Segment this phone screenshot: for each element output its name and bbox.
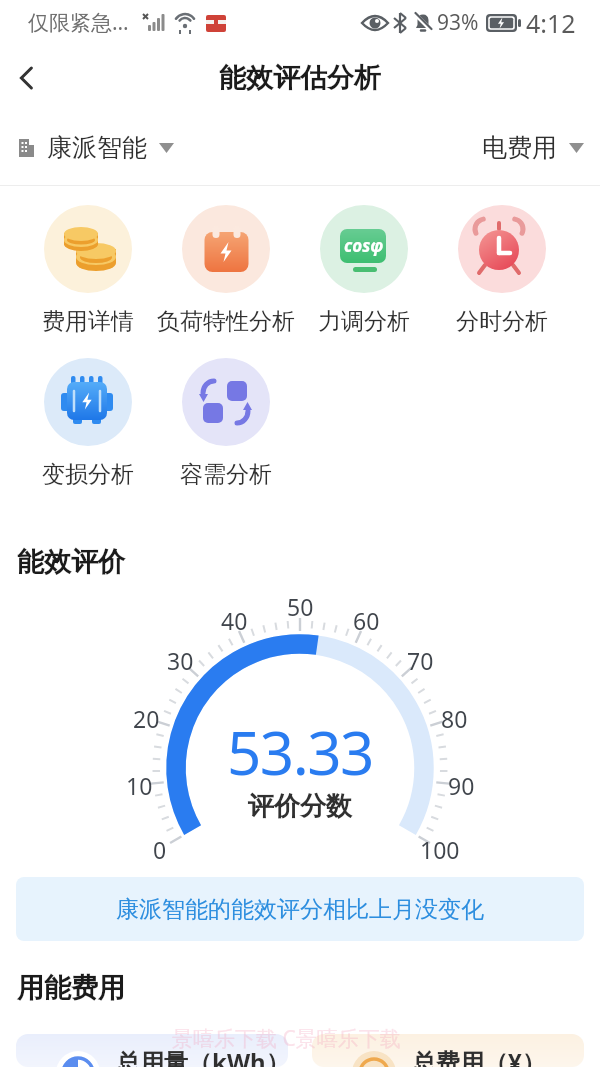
staticText: 80 xyxy=(441,703,468,734)
button[interactable]: cosφ xyxy=(295,205,433,336)
button[interactable]: 容需分析 xyxy=(157,358,295,489)
staticText: 容需分析 xyxy=(180,460,272,489)
button[interactable]: 总用量（kWh） xyxy=(16,1034,288,1067)
staticText: 20 xyxy=(133,703,160,734)
staticText: 电费用 xyxy=(482,132,557,163)
staticText: 93% xyxy=(437,8,479,37)
staticText: 变损分析 xyxy=(42,460,134,489)
button[interactable]: 总费用（¥） xyxy=(312,1034,584,1067)
staticText: 50 xyxy=(287,591,314,622)
staticText: 40 xyxy=(221,605,248,636)
staticText: 60 xyxy=(353,605,380,636)
staticText: 评价分数 xyxy=(248,790,352,823)
button[interactable]: 电费用 xyxy=(482,132,584,163)
staticText: 负荷特性分析 xyxy=(157,307,295,336)
staticText: 53.33 xyxy=(227,711,373,793)
button[interactable]: 分时分析 xyxy=(433,205,571,336)
staticText: 0 xyxy=(153,834,167,865)
staticText: 仅限紧急… xyxy=(28,8,129,37)
button[interactable]: 负荷特性分析 xyxy=(157,205,295,336)
button[interactable]: 康派智能 xyxy=(16,132,174,163)
staticText: 能效评价 xyxy=(17,545,125,579)
button[interactable]: 康派智能的能效评分相比上月没变化 xyxy=(16,877,584,941)
staticText: 力调分析 xyxy=(318,307,410,336)
staticText: 4:12 xyxy=(526,6,576,40)
staticText: 100 xyxy=(420,834,460,865)
button[interactable]: 变损分析 xyxy=(19,358,157,489)
staticText: 总用量（kWh） xyxy=(116,1045,288,1067)
staticText: 总费用（¥） xyxy=(412,1045,546,1067)
staticText: 费用详情 xyxy=(42,307,134,336)
staticText: 30 xyxy=(167,645,194,676)
staticText: 用能费用 xyxy=(17,971,125,1005)
staticText: 能效评估分析 xyxy=(219,61,381,95)
staticText: cosφ xyxy=(344,234,384,257)
staticText: 景嘻乐下载 C景嘻乐下载 xyxy=(172,1024,401,1053)
staticText: 康派智能 xyxy=(47,132,147,163)
button[interactable]: 费用详情 xyxy=(19,205,157,336)
button[interactable] xyxy=(5,56,49,100)
staticText: 90 xyxy=(448,770,475,801)
staticText: 70 xyxy=(407,645,434,676)
staticText: 康派智能的能效评分相比上月没变化 xyxy=(116,895,484,924)
staticText: 10 xyxy=(126,770,153,801)
staticText: 分时分析 xyxy=(456,307,548,336)
